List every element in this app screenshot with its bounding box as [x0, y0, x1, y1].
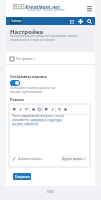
staticText: Часто задаваемые вопросы, наши	[12, 114, 64, 118]
button[interactable]: Emoji	[49, 105, 55, 113]
button[interactable]: Apps	[68, 18, 75, 25]
staticText: Настройте вашего аккаунта и управляйте с…	[10, 34, 88, 42]
staticText: Отображать подпись	[10, 74, 47, 79]
staticText: Добавить файлы	[18, 157, 42, 161]
staticText: Настройка	[16, 57, 32, 61]
button[interactable]: Link	[43, 105, 49, 113]
button[interactable]: Главная	[10, 18, 22, 24]
button[interactable]: Добавить файлы	[12, 157, 42, 161]
staticText: разработки	[12, 118, 31, 122]
staticText: Сохранить	[15, 175, 30, 179]
button[interactable]: Text colour	[30, 105, 36, 113]
staticText: Отображать подпись должна под вашими пуб…	[10, 86, 66, 94]
staticText: Подпись	[10, 98, 25, 102]
button[interactable]: Image	[56, 105, 62, 113]
staticText: Пошаговые, онлайн, дизайны	[27, 8, 65, 12]
staticText: Другие медиа	[62, 157, 82, 161]
staticText: Kreatikom.net	[25, 3, 61, 10]
button[interactable]: Add	[77, 18, 84, 25]
staticText: Настройка	[10, 28, 44, 36]
button[interactable]: Italic	[17, 105, 23, 113]
staticText: Главная	[11, 19, 22, 23]
staticText: хостинг кабинета	[12, 122, 39, 126]
button[interactable]: Toggle signature	[10, 80, 20, 86]
button[interactable]: Сохранить	[13, 173, 31, 180]
button[interactable]: Menu	[86, 5, 93, 12]
button[interactable]: Другие медиа	[62, 155, 85, 162]
button[interactable]: Highlight	[36, 105, 42, 113]
button[interactable]: Underline	[23, 105, 29, 113]
button[interactable]: Настройка	[10, 55, 35, 62]
button[interactable]: Bold	[11, 105, 17, 113]
button[interactable]: Attachment	[62, 105, 68, 113]
staticText: дизайна и структура	[31, 118, 62, 122]
button[interactable]: Search	[86, 18, 93, 25]
